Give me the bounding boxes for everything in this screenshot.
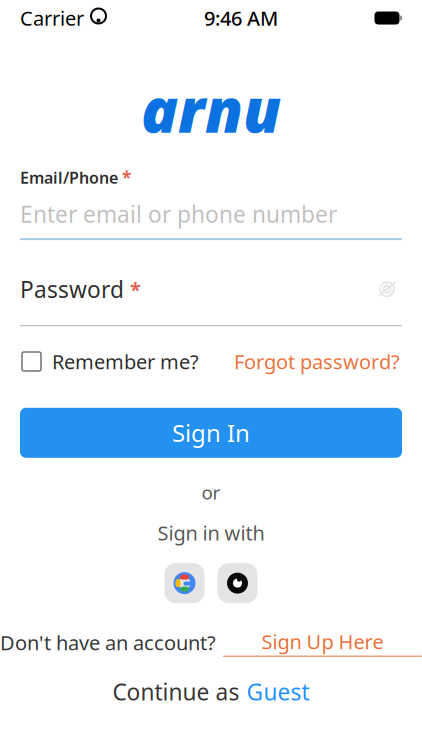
staticText: Don't have an account? [0, 629, 216, 656]
staticText: Forgot password? [234, 348, 400, 375]
staticText: Guest [246, 677, 309, 707]
staticText: Password [20, 274, 124, 304]
staticText: arnu [141, 68, 281, 150]
button[interactable]: Forgot password? [234, 348, 400, 375]
staticText: Remember me? [52, 348, 199, 375]
staticText: Carrier [20, 5, 84, 31]
button[interactable]: Remember me? [22, 348, 199, 375]
button[interactable]: Sign in with Apple [217, 563, 257, 603]
staticText: 9:46 AM [204, 5, 278, 31]
button[interactable]: Sign In [20, 408, 402, 458]
staticText: * [130, 276, 141, 302]
staticText: Enter email or phone number [20, 199, 337, 229]
staticText: or [201, 480, 220, 505]
button[interactable]: Show password [372, 276, 402, 302]
button[interactable]: Guest [246, 677, 309, 707]
button[interactable]: Sign in with Google [164, 563, 204, 603]
staticText: Sign in with [157, 520, 264, 546]
staticText: Continue as [112, 677, 239, 707]
staticText: Email/Phone [20, 167, 118, 188]
staticText: Sign Up Here [261, 628, 383, 655]
staticText: * [122, 166, 131, 189]
button[interactable]: Sign Up Here [223, 628, 422, 657]
staticText: Sign In [172, 417, 250, 449]
